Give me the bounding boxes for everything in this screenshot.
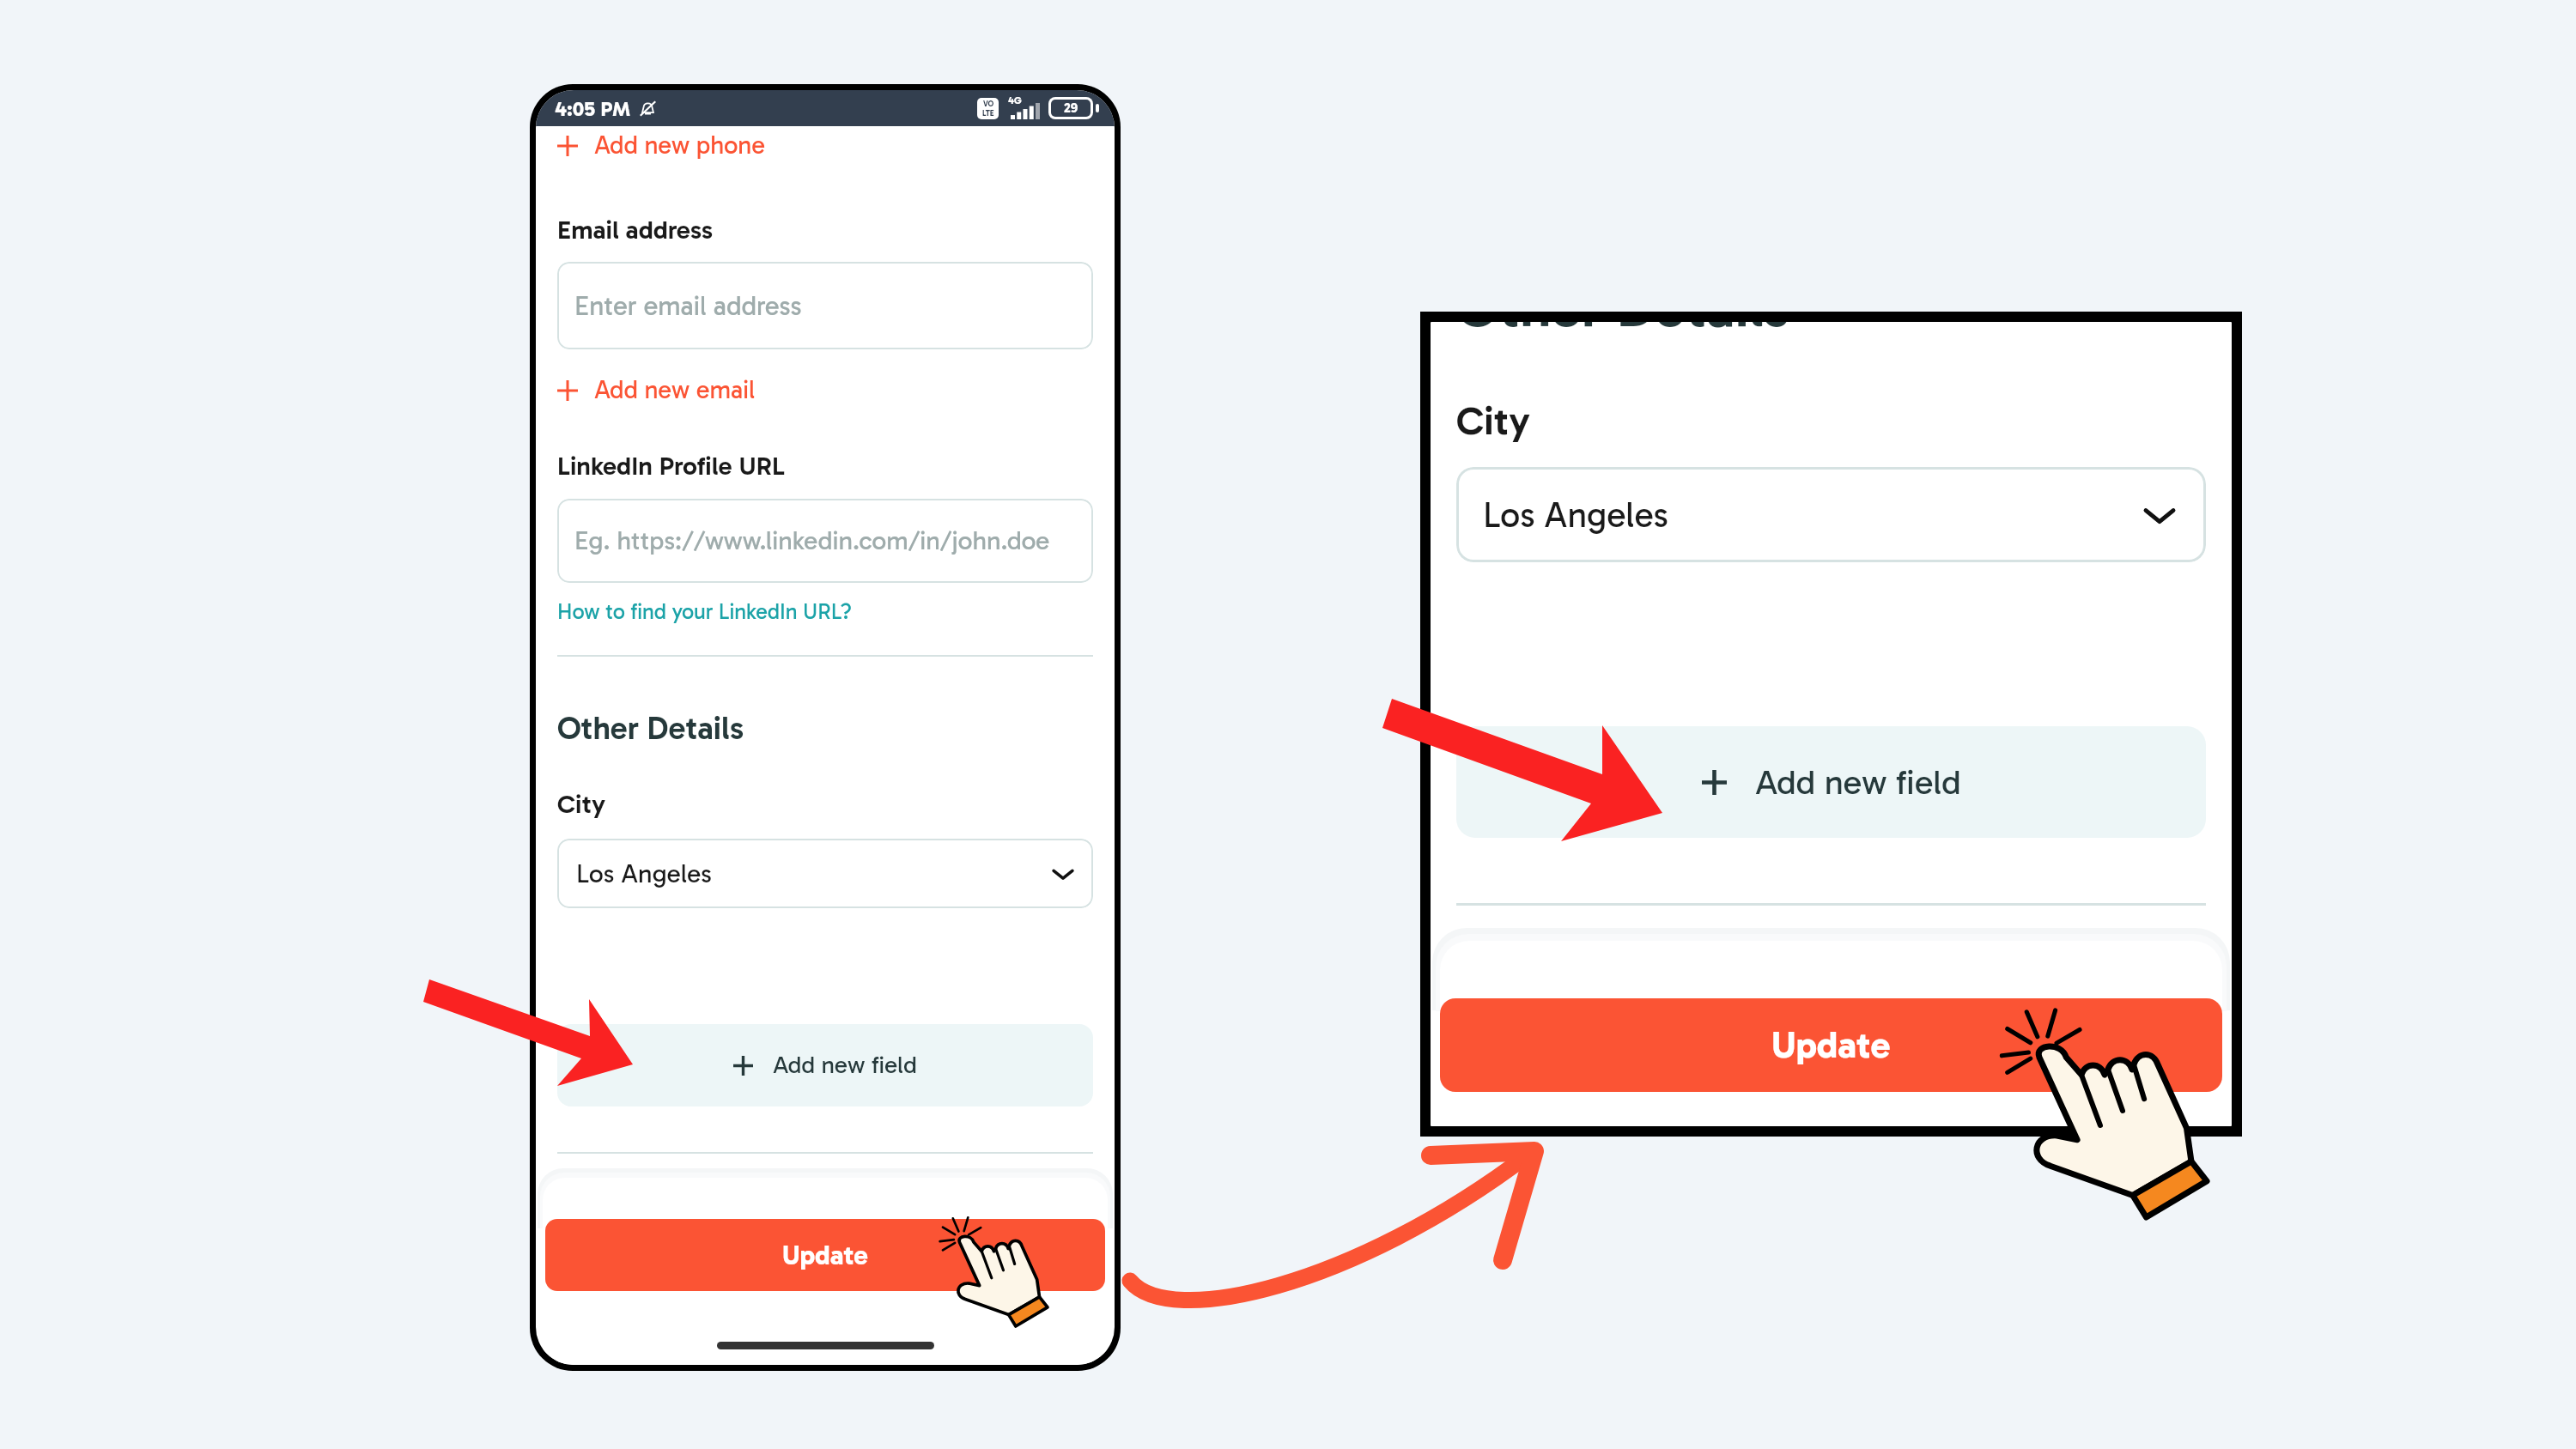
staticText: Email address <box>557 215 714 246</box>
staticText: 29 <box>1064 100 1078 116</box>
staticText: Enter email address <box>574 290 802 322</box>
staticText: Eg. https://www.linkedin.com/in/john.doe <box>574 525 1050 556</box>
staticText: Los Angeles <box>576 858 713 889</box>
button[interactable]: Add new phone <box>557 130 765 161</box>
button[interactable]: Enter email address <box>557 262 1093 349</box>
button[interactable]: How to find your LinkedIn URL? <box>557 598 852 624</box>
button[interactable]: Add new field <box>1456 726 2206 838</box>
staticText: Add new field <box>773 1051 917 1080</box>
staticText: LTE <box>982 109 994 118</box>
staticText: LinkedIn Profile URL <box>557 451 785 482</box>
staticText: 4G <box>1008 94 1022 106</box>
staticText: Update <box>1771 1023 1891 1068</box>
button[interactable]: Los Angeles <box>557 839 1093 908</box>
staticText: Update <box>782 1240 868 1271</box>
button[interactable]: Update <box>545 1219 1105 1291</box>
staticText: Add new email <box>594 375 756 405</box>
staticText: City <box>557 789 605 820</box>
staticText: Other Details <box>1456 322 1789 341</box>
staticText: Add new field <box>1755 761 1961 803</box>
button[interactable]: Los Angeles <box>1456 467 2206 562</box>
staticText: Add new phone <box>594 130 765 161</box>
staticText: City <box>1456 397 1530 445</box>
button[interactable]: Eg. https://www.linkedin.com/in/john.doe <box>557 499 1093 583</box>
button[interactable]: Add new email <box>557 375 756 405</box>
staticText: Other Details <box>557 709 744 747</box>
other: Notifications silenced <box>638 99 658 118</box>
button[interactable]: Add new field <box>557 1024 1093 1106</box>
staticText: 4:05 PM <box>555 96 630 121</box>
staticText: VO <box>983 100 994 109</box>
staticText: Los Angeles <box>1483 494 1668 536</box>
button[interactable]: Update <box>1440 998 2222 1092</box>
